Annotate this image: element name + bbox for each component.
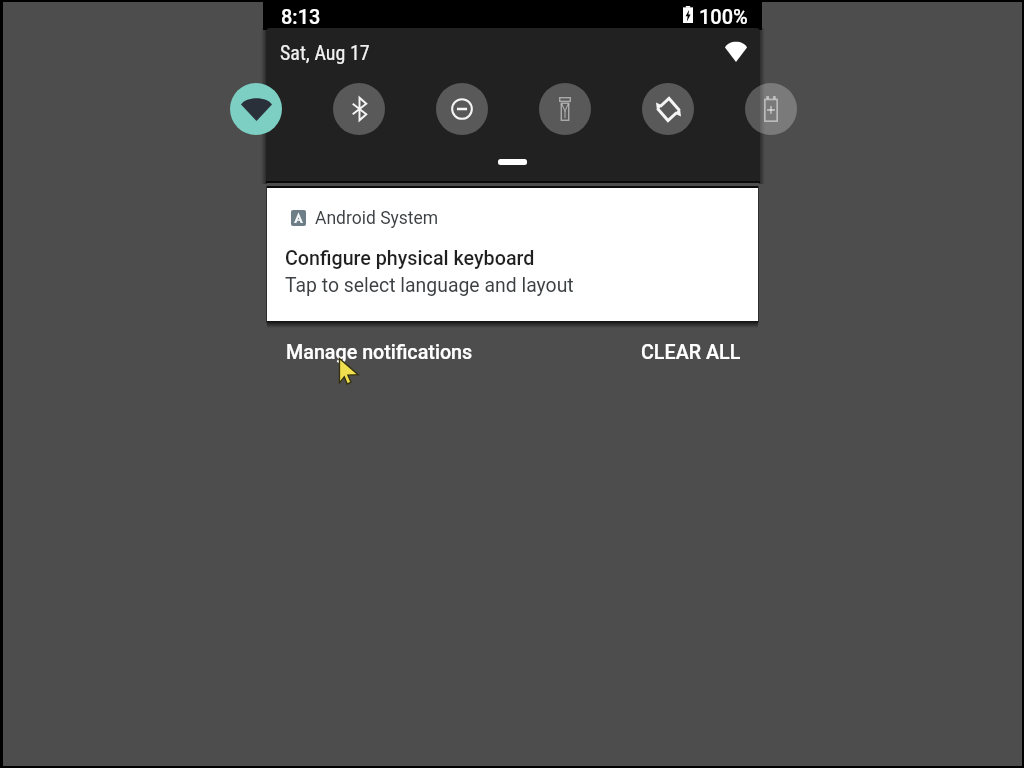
staticText: 100% xyxy=(699,5,748,28)
button[interactable]: Flashlight xyxy=(539,83,591,135)
button[interactable]: Battery Saver xyxy=(745,83,797,135)
button[interactable]: CLEAR ALL xyxy=(631,335,751,369)
staticText: 8:13 xyxy=(281,5,321,28)
button[interactable]: Manage notifications xyxy=(276,335,483,369)
staticText: Configure physical keyboard xyxy=(285,247,535,270)
staticText: CLEAR ALL xyxy=(641,341,741,364)
button[interactable]: Auto-rotate xyxy=(642,83,694,135)
staticText: Manage notifications xyxy=(286,341,473,364)
button[interactable]: Wi-Fi xyxy=(230,83,282,135)
staticText: Sat, Aug 17 xyxy=(280,41,370,64)
button[interactable]: Android System xyxy=(267,188,758,321)
button[interactable]: Do not disturb xyxy=(436,83,488,135)
staticText: Android System xyxy=(315,208,439,229)
staticText: Tap to select language and layout xyxy=(285,274,574,297)
button[interactable]: Bluetooth xyxy=(333,83,385,135)
